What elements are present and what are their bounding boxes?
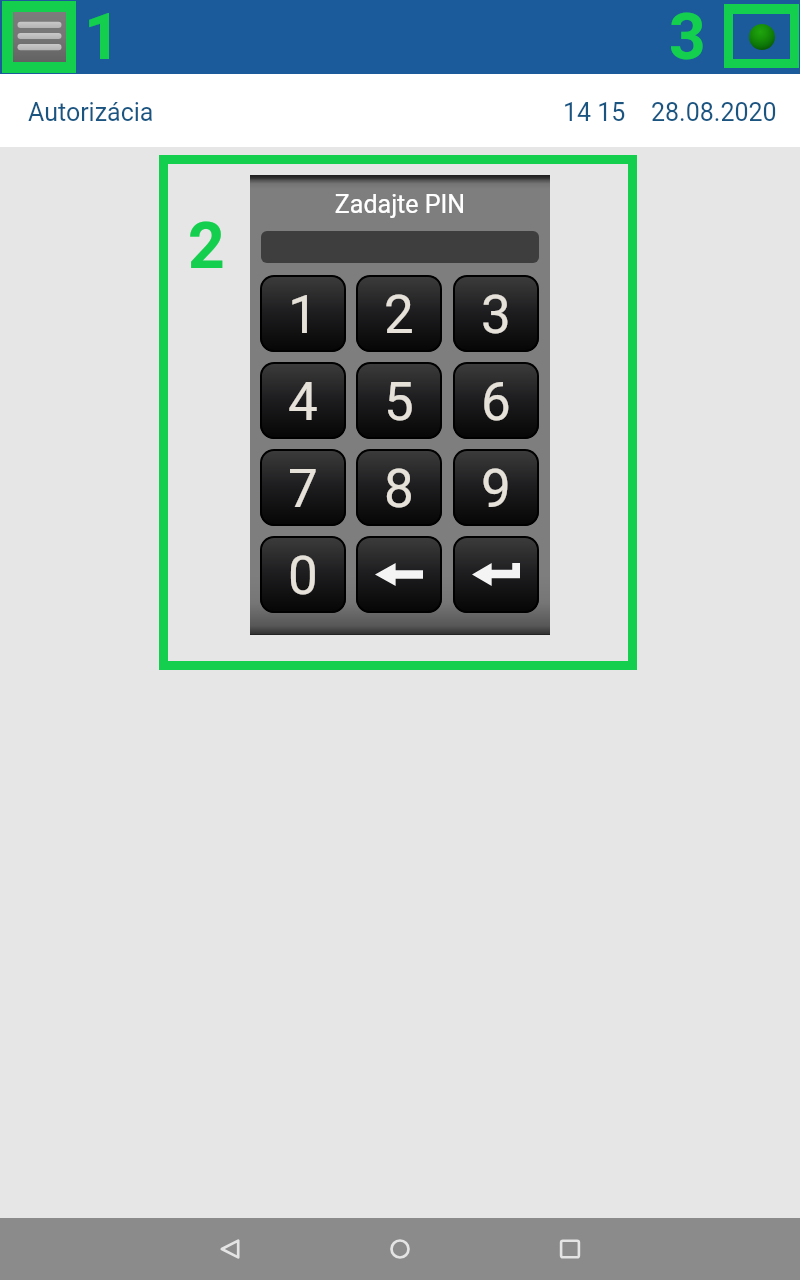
staticText: 2: [384, 284, 414, 346]
staticText: 5: [384, 371, 414, 433]
staticText: 9: [481, 458, 511, 520]
button[interactable]: 5: [356, 362, 442, 439]
button[interactable]: 3: [453, 275, 539, 352]
button[interactable]: 7: [260, 449, 346, 526]
button[interactable]: 4: [260, 362, 346, 439]
staticText: 3: [481, 284, 511, 346]
button[interactable]: Open navigation menu: [2, 1, 76, 73]
staticText: Zadajte PIN: [250, 190, 550, 219]
staticText: 7: [288, 458, 318, 520]
staticText: 3: [669, 0, 706, 74]
button[interactable]: Backspace: [356, 536, 442, 613]
button[interactable]: 9: [453, 449, 539, 526]
staticText: 2: [188, 209, 225, 284]
button[interactable]: 6: [453, 362, 539, 439]
staticText: 28.08.2020: [651, 98, 777, 127]
button[interactable]: 0: [260, 536, 346, 613]
staticText: 8: [384, 458, 414, 520]
staticText: 6: [481, 371, 511, 433]
button[interactable]: Back: [200, 1218, 262, 1280]
button[interactable]: 2: [356, 275, 442, 352]
button[interactable]: Connection status: [724, 4, 799, 68]
button[interactable]: Confirm: [453, 536, 539, 613]
button[interactable]: 8: [356, 449, 442, 526]
staticText: 1: [288, 284, 318, 346]
button[interactable]: PIN entry field: [261, 231, 539, 263]
staticText: Autorizácia: [28, 98, 154, 127]
button[interactable]: 1: [260, 275, 346, 352]
staticText: 0: [288, 545, 318, 607]
button[interactable]: Home: [369, 1218, 431, 1280]
button[interactable]: Recent apps: [539, 1218, 601, 1280]
staticText: 1: [84, 0, 121, 74]
staticText: 4: [288, 371, 318, 433]
staticText: 14 15: [563, 98, 626, 127]
